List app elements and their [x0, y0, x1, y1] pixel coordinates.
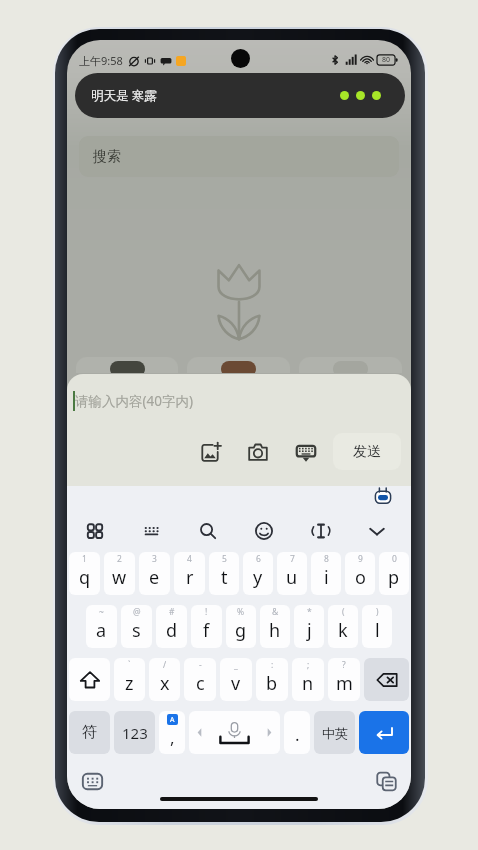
staticText: h	[269, 618, 281, 643]
staticText: 123	[122, 723, 148, 743]
staticText: s	[132, 618, 141, 643]
button[interactable]: ?	[328, 658, 360, 701]
staticText: _	[234, 659, 238, 671]
staticText: @	[133, 606, 141, 618]
staticText: i	[324, 565, 329, 590]
staticText: g	[235, 618, 247, 643]
button[interactable]: 发送	[333, 433, 401, 470]
button[interactable]: 3	[139, 552, 170, 595]
staticText: ?	[342, 659, 346, 671]
staticText: -	[199, 659, 202, 671]
button[interactable]: :	[256, 658, 288, 701]
button[interactable]	[76, 357, 178, 373]
button[interactable]: 明天是 寒露	[75, 73, 405, 118]
staticText: A	[170, 715, 175, 725]
staticText: :	[271, 659, 274, 671]
button[interactable]: _	[220, 658, 252, 701]
button[interactable]: #	[156, 605, 187, 648]
staticText: e	[149, 565, 160, 590]
staticText: 2	[117, 553, 122, 565]
staticText: p	[388, 565, 400, 590]
button[interactable]: 0	[379, 552, 409, 595]
button[interactable]: A	[159, 711, 185, 754]
button[interactable]: Enter	[359, 711, 409, 754]
staticText: 发送	[353, 443, 381, 461]
button[interactable]: -	[184, 658, 216, 701]
staticText: 3	[152, 553, 157, 565]
staticText: 6	[256, 553, 261, 565]
staticText: 中英	[322, 725, 348, 741]
button[interactable]	[299, 357, 402, 373]
button[interactable]: 9	[345, 552, 375, 595]
button[interactable]: 7	[277, 552, 307, 595]
button[interactable]: `	[114, 658, 145, 701]
staticText: q	[79, 565, 91, 590]
button[interactable]: !	[191, 605, 222, 648]
button[interactable]: 搜索	[79, 136, 399, 177]
button[interactable]: 中英	[314, 711, 355, 754]
staticText: c	[196, 671, 205, 696]
button[interactable]: Emoji	[249, 516, 279, 546]
staticText: 0	[392, 553, 397, 565]
staticText: ;	[307, 659, 310, 671]
button[interactable]: 4	[174, 552, 205, 595]
button[interactable]: *	[294, 605, 324, 648]
button[interactable]: Move cursor	[306, 516, 336, 546]
button[interactable]: 8	[311, 552, 341, 595]
button[interactable]: 123	[114, 711, 155, 754]
staticText: 上午9:58	[79, 53, 123, 68]
staticText: *	[307, 606, 312, 618]
button[interactable]: %	[226, 605, 256, 648]
button[interactable]: Search	[193, 516, 223, 546]
staticText: b	[266, 671, 278, 696]
button[interactable]: (	[328, 605, 358, 648]
staticText: .	[295, 723, 300, 746]
button[interactable]: 1	[69, 552, 100, 595]
button[interactable]: 6	[243, 552, 273, 595]
staticText: l	[375, 618, 380, 643]
staticText: 7	[290, 553, 295, 565]
button[interactable]: Clipboard	[371, 766, 401, 796]
staticText: 80	[382, 55, 391, 65]
button[interactable]: Space	[189, 711, 280, 754]
button[interactable]: Shift	[69, 658, 110, 701]
button[interactable]: Assistant	[373, 486, 393, 506]
button[interactable]: 2	[104, 552, 135, 595]
button[interactable]: Add image	[197, 439, 223, 465]
button[interactable]: .	[284, 711, 310, 754]
staticText: 明天是 寒露	[91, 87, 157, 104]
staticText: y	[253, 565, 263, 590]
staticText: f	[203, 618, 210, 643]
button[interactable]: ~	[86, 605, 117, 648]
staticText: r	[186, 565, 194, 590]
button[interactable]: Apps	[80, 516, 110, 546]
staticText: !	[205, 606, 208, 618]
button[interactable]: Camera	[245, 439, 271, 465]
staticText: `	[128, 659, 131, 671]
button[interactable]: 5	[209, 552, 239, 595]
staticText: w	[112, 565, 127, 590]
button[interactable]: Keyboard	[77, 766, 107, 796]
button[interactable]: )	[362, 605, 392, 648]
staticText: m	[336, 671, 353, 696]
button[interactable]: Hide keyboard	[293, 439, 319, 465]
staticText: )	[376, 606, 379, 618]
button[interactable]: Backspace	[364, 658, 409, 701]
button[interactable]: Hide keyboard	[362, 516, 392, 546]
staticText: 1	[82, 553, 87, 565]
staticText: n	[302, 671, 314, 696]
staticText: u	[286, 565, 298, 590]
staticText: 9	[358, 553, 363, 565]
staticText: %	[237, 606, 245, 618]
button[interactable]: /	[149, 658, 180, 701]
staticText: k	[338, 618, 348, 643]
staticText: v	[231, 671, 241, 696]
button[interactable]: 符	[69, 711, 110, 754]
staticText: #	[169, 606, 175, 618]
button[interactable]	[187, 357, 290, 373]
staticText: j	[307, 618, 312, 643]
button[interactable]: @	[121, 605, 152, 648]
button[interactable]: ;	[292, 658, 324, 701]
button[interactable]: Keyboard layout	[136, 516, 166, 546]
button[interactable]: &	[260, 605, 290, 648]
